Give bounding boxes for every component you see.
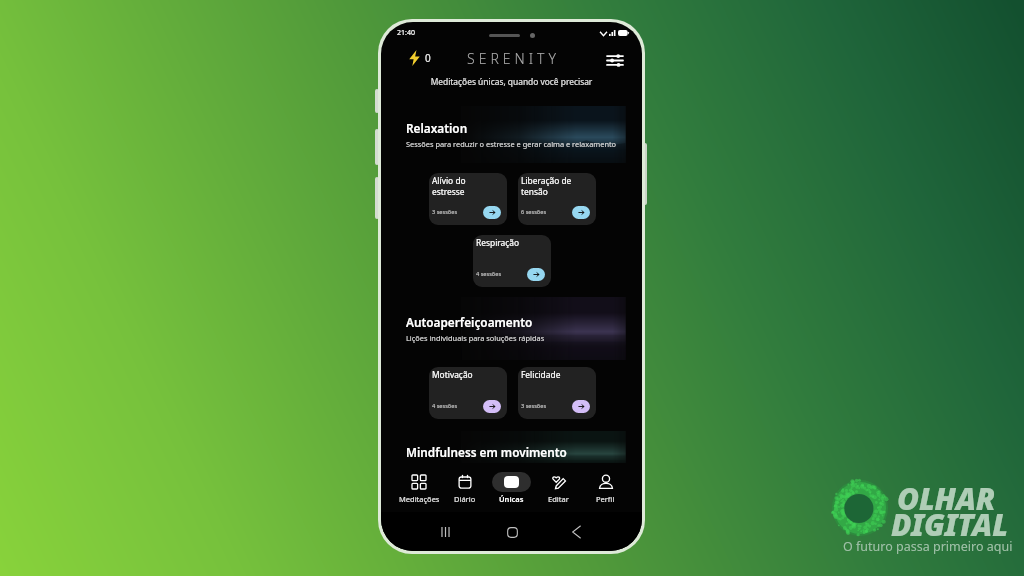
staticText: Diário <box>454 494 476 504</box>
staticText: Sessões para reduzir o estresse e gerar … <box>406 139 617 149</box>
staticText: 3 sessões <box>432 208 458 216</box>
staticText: Felicidade <box>521 369 561 380</box>
staticText: 6 sessões <box>521 208 547 216</box>
button[interactable]: Liberação de tensão <box>518 173 596 225</box>
staticText: Respiração <box>476 237 520 248</box>
staticText: SERENITY <box>383 49 642 68</box>
staticText: O futuro passa primeiro aqui <box>843 538 1013 555</box>
button[interactable]: Perfil <box>582 467 629 509</box>
staticText: Editar <box>548 494 569 504</box>
staticText: Motivação <box>432 369 473 380</box>
staticText: Relaxation <box>406 120 468 136</box>
staticText: Alívio do estresse <box>432 175 466 197</box>
button[interactable]: Home <box>502 522 522 542</box>
button[interactable]: 0 <box>409 50 431 66</box>
staticText: Meditações únicas, quando você precisar <box>381 76 642 87</box>
staticText: 21:40 <box>397 28 415 38</box>
staticText: Autoaperfeiçoamento <box>406 314 533 330</box>
button[interactable]: Motivação <box>429 367 507 419</box>
button[interactable]: Settings <box>605 50 625 70</box>
button[interactable]: Recents <box>435 522 455 542</box>
staticText: Mindfulness em movimento <box>406 444 567 460</box>
button[interactable]: Alívio do estresse <box>429 173 507 225</box>
staticText: Liberação de tensão <box>521 175 572 197</box>
button[interactable]: Back <box>566 522 586 542</box>
button[interactable]: Diário <box>442 467 488 509</box>
button[interactable]: Únicas <box>488 467 535 509</box>
staticText: 3 sessões <box>521 402 547 410</box>
button[interactable]: Meditações <box>396 467 442 509</box>
staticText: Perfil <box>596 494 615 504</box>
button[interactable]: Respiração <box>473 235 551 287</box>
button[interactable]: Felicidade <box>518 367 596 419</box>
staticText: Lições individuais para soluções rápidas <box>406 333 545 343</box>
staticText: 4 sessões <box>476 270 502 278</box>
staticText: Meditações <box>399 494 440 504</box>
staticText: 4 sessões <box>432 402 458 410</box>
staticText: Únicas <box>499 494 524 504</box>
staticText: DIGITAL <box>891 504 1008 545</box>
staticText: 0 <box>425 51 431 65</box>
button[interactable]: Editar <box>535 467 582 509</box>
staticText: OLHAR <box>897 478 996 519</box>
